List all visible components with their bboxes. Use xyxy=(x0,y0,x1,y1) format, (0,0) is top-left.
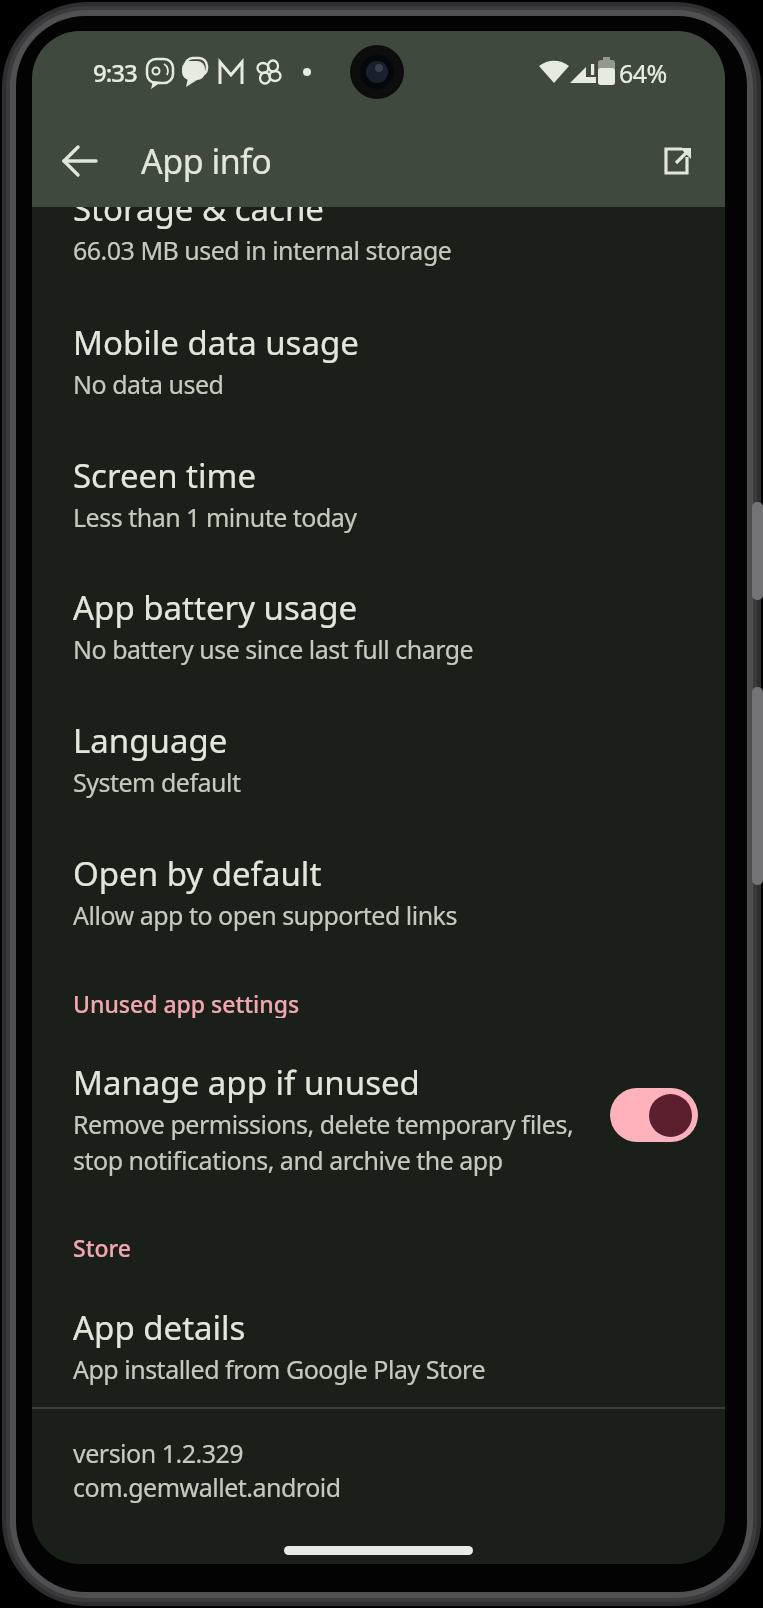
button[interactable]: Screen time xyxy=(32,433,725,553)
button[interactable]: Language xyxy=(32,698,725,818)
button[interactable]: Manage app if unused xyxy=(32,1041,725,1195)
staticText: 64% xyxy=(619,56,667,88)
staticText: Language xyxy=(73,718,228,763)
button[interactable] xyxy=(56,137,104,185)
staticText: Storage & cache xyxy=(73,186,324,231)
staticText: Open by default xyxy=(73,851,322,896)
button[interactable] xyxy=(610,1088,698,1142)
staticText: No data used xyxy=(73,367,224,401)
staticText: System default xyxy=(73,765,241,799)
staticText: 66.03 MB used in internal storage xyxy=(73,233,452,267)
staticText: Less than 1 minute today xyxy=(73,500,357,534)
staticText: No battery use since last full charge xyxy=(73,632,474,666)
staticText: App battery usage xyxy=(73,585,358,630)
button[interactable]: Open by default xyxy=(32,831,725,951)
button[interactable]: Storage & cache xyxy=(32,166,725,286)
button[interactable]: App battery usage xyxy=(32,565,725,685)
button[interactable]: App details xyxy=(32,1285,725,1405)
staticText: Mobile data usage xyxy=(73,320,359,365)
staticText: App details xyxy=(73,1305,246,1350)
staticText: App installed from Google Play Store xyxy=(73,1352,485,1386)
button[interactable] xyxy=(654,137,702,185)
staticText: Manage app if unused xyxy=(73,1060,420,1105)
button[interactable]: Mobile data usage xyxy=(32,300,725,420)
staticText: Store xyxy=(73,1232,131,1262)
staticText: Unused app settings xyxy=(73,988,300,1018)
staticText: com.gemwallet.android xyxy=(73,1470,341,1504)
staticText: Allow app to open supported links xyxy=(73,898,457,932)
staticText: 9:33 xyxy=(93,56,137,88)
staticText: Remove permissions, delete temporary fil… xyxy=(73,1107,574,1141)
staticText: version 1.2.329 xyxy=(73,1436,244,1470)
staticText: Screen time xyxy=(73,453,257,498)
staticText: App info xyxy=(141,138,272,184)
staticText: stop notifications, and archive the app xyxy=(73,1143,503,1177)
